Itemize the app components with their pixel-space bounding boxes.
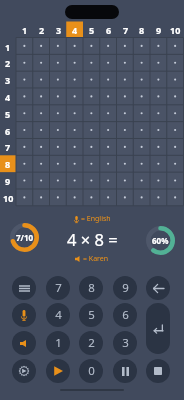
button[interactable]: Speaker	[12, 331, 36, 355]
button[interactable]: 7/10	[10, 223, 39, 252]
staticText: = English	[81, 214, 111, 224]
staticText: 60%	[152, 235, 169, 246]
button[interactable]: 8	[79, 276, 103, 300]
staticText: 6	[122, 307, 129, 323]
staticText: 5	[89, 24, 95, 36]
button[interactable]: 7	[117, 22, 134, 38]
button[interactable]: 9	[150, 22, 167, 38]
staticText: 4	[55, 307, 62, 323]
button[interactable]: Microphone	[12, 303, 36, 327]
staticText: 9	[122, 280, 129, 296]
staticText: 10	[170, 24, 181, 36]
staticText: 3	[56, 24, 62, 36]
staticText: 4	[72, 24, 78, 36]
button[interactable]: 0	[79, 359, 103, 383]
button[interactable]: 10	[0, 189, 16, 206]
staticText: 7	[5, 141, 11, 153]
staticText: 2	[88, 335, 95, 351]
staticText: 10	[3, 192, 14, 204]
staticText: 8	[139, 24, 145, 36]
button[interactable]: 2	[0, 54, 16, 71]
button[interactable]: 9	[113, 276, 137, 300]
button[interactable]: 3	[50, 22, 67, 38]
staticText: 5	[5, 108, 11, 120]
button[interactable]: 4	[66, 22, 83, 38]
button[interactable]: 6	[0, 122, 16, 139]
staticText: 4 × 8 =	[67, 228, 118, 250]
staticText: 0	[88, 363, 95, 379]
staticText: 9	[5, 175, 11, 187]
button[interactable]: 4	[46, 303, 70, 327]
button[interactable]: 10	[167, 22, 184, 38]
staticText: 1	[55, 335, 62, 351]
button[interactable]: Play	[46, 359, 70, 383]
staticText: = Karen	[83, 254, 109, 264]
staticText: 9	[156, 24, 162, 36]
staticText: 7/10	[16, 232, 34, 243]
staticText: 8	[5, 158, 11, 170]
button[interactable]: 1	[0, 38, 16, 55]
staticText: 7	[55, 280, 62, 296]
button[interactable]: Enter	[146, 303, 170, 354]
staticText: 1	[5, 41, 11, 53]
button[interactable]: 7	[46, 276, 70, 300]
staticText: 2	[39, 24, 45, 36]
button[interactable]: 7	[0, 138, 16, 155]
staticText: 6	[5, 125, 11, 137]
staticText: 7	[123, 24, 129, 36]
button[interactable]: 2	[79, 331, 103, 355]
staticText: 3	[122, 335, 129, 351]
staticText: 6	[106, 24, 112, 36]
button[interactable]: 3	[0, 71, 16, 88]
button[interactable]: Pause	[113, 359, 137, 383]
button[interactable]: 1	[46, 331, 70, 355]
button[interactable]: 5	[83, 22, 100, 38]
button[interactable]: 8	[133, 22, 150, 38]
staticText: 3	[5, 74, 11, 86]
staticText: 2	[5, 57, 11, 69]
staticText: 1	[22, 24, 28, 36]
button[interactable]: 3	[113, 331, 137, 355]
button[interactable]: 6	[113, 303, 137, 327]
button[interactable]: 6	[100, 22, 117, 38]
button[interactable]: 9	[0, 172, 16, 189]
button[interactable]: 60%	[146, 226, 175, 255]
button[interactable]: 8	[0, 155, 16, 172]
button[interactable]: 2	[33, 22, 50, 38]
button[interactable]: = English	[52, 214, 132, 264]
button[interactable]: 5	[79, 303, 103, 327]
staticText: 8	[88, 280, 95, 296]
button[interactable]: 5	[0, 105, 16, 122]
button[interactable]: Menu	[12, 276, 36, 300]
button[interactable]: Backspace	[146, 276, 170, 300]
staticText: 5	[88, 307, 95, 323]
button[interactable]: Settings	[12, 359, 36, 383]
button[interactable]: 4	[0, 88, 16, 105]
button[interactable]: Stop	[146, 359, 170, 383]
staticText: 4	[5, 91, 11, 103]
button[interactable]: 1	[16, 22, 33, 38]
